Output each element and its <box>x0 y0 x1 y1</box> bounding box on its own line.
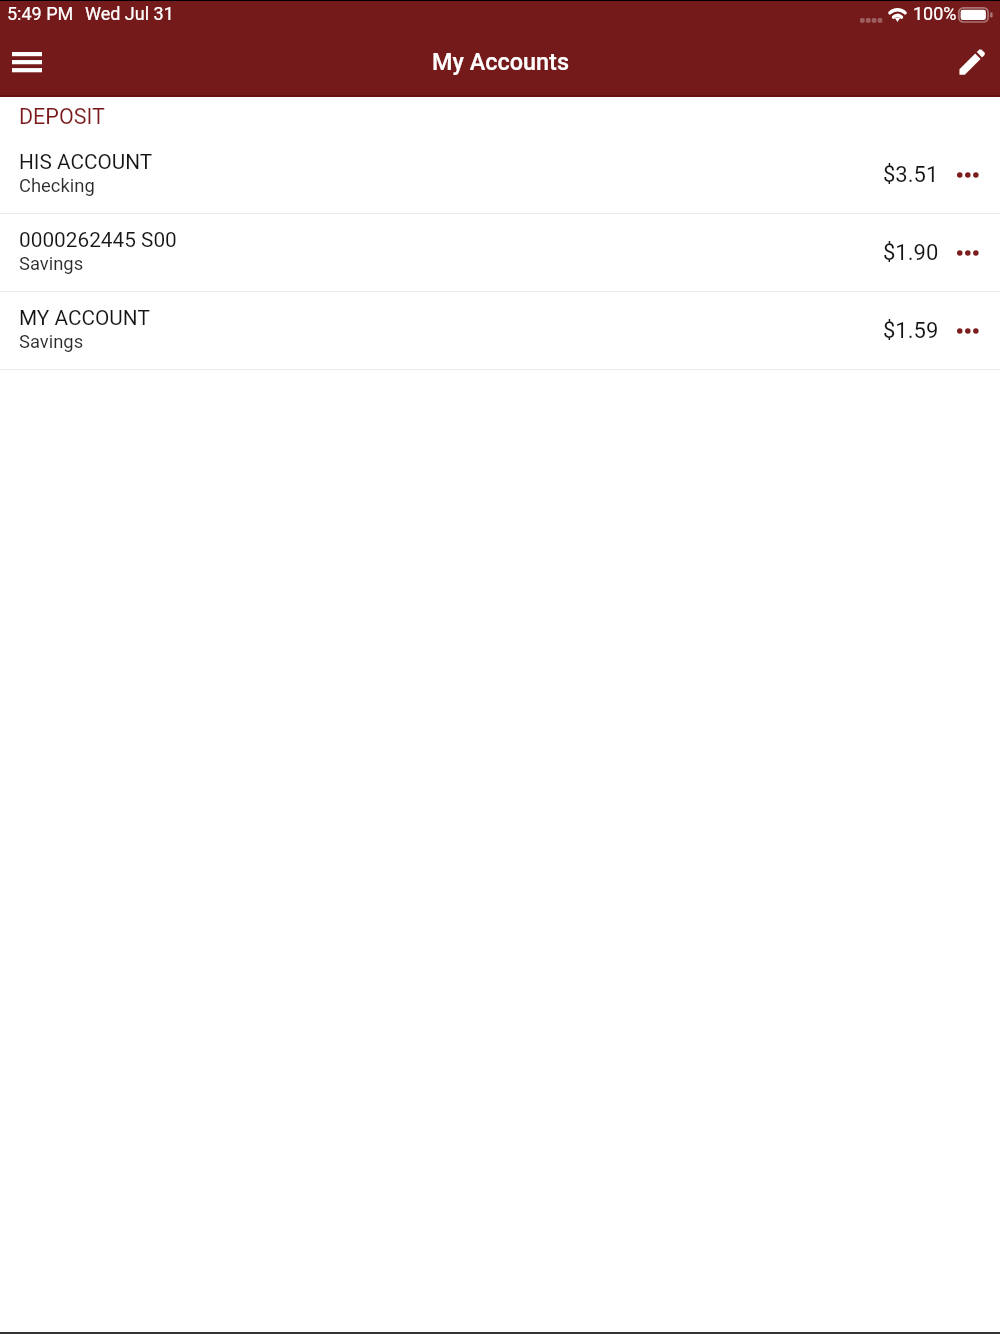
button[interactable]: More options <box>952 238 982 268</box>
staticText: 0000262445 S00 <box>19 228 177 252</box>
staticText: Savings <box>19 331 84 353</box>
staticText: $1.59 <box>883 318 939 344</box>
staticText: Checking <box>19 175 95 197</box>
button[interactable]: HIS ACCOUNT <box>0 136 1000 214</box>
staticText: HIS ACCOUNT <box>19 150 153 174</box>
button[interactable]: 0000262445 S00 <box>0 214 1000 292</box>
staticText: DEPOSIT <box>19 104 105 129</box>
staticText: 5:49 PM <box>7 3 74 24</box>
button[interactable]: Open navigation menu <box>0 26 54 95</box>
staticText: My Accounts <box>432 48 569 75</box>
staticText: 100% <box>913 3 957 24</box>
staticText: Savings <box>19 253 84 275</box>
button[interactable]: MY ACCOUNT <box>0 292 1000 370</box>
button[interactable]: More options <box>952 316 982 346</box>
button[interactable]: More options <box>952 160 982 190</box>
button[interactable]: Edit accounts <box>944 26 1000 95</box>
staticText: Wed Jul 31 <box>85 3 174 24</box>
staticText: $1.90 <box>883 240 939 266</box>
staticText: MY ACCOUNT <box>19 306 150 330</box>
staticText: $3.51 <box>883 162 939 188</box>
